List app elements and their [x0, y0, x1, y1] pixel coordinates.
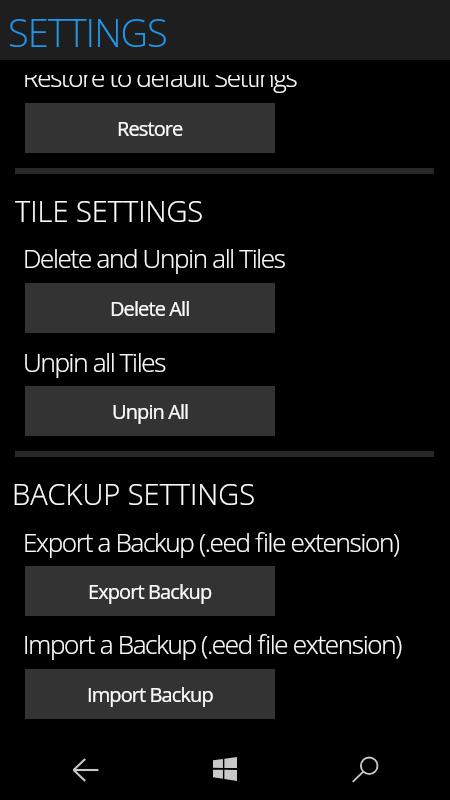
button[interactable]: Restore: [25, 103, 275, 153]
staticText: Delete and Unpin all Tiles: [23, 240, 285, 275]
staticText: Export Backup: [88, 578, 212, 605]
staticText: Delete All: [110, 295, 190, 322]
staticText: TILE SETTINGS: [15, 191, 204, 230]
button[interactable]: Export Backup: [25, 566, 275, 616]
button[interactable]: Back: [46, 738, 126, 800]
staticText: Restore: [117, 115, 183, 142]
staticText: Export a Backup (.eed file extension): [23, 524, 399, 559]
staticText: Import Backup: [87, 681, 213, 708]
button[interactable]: Search: [325, 738, 405, 800]
button[interactable]: Unpin All: [25, 386, 275, 436]
staticText: BACKUP SETTINGS: [12, 474, 256, 513]
staticText: Import a Backup (.eed file extension): [23, 626, 401, 661]
button[interactable]: Start: [185, 737, 265, 800]
button[interactable]: Import Backup: [25, 669, 275, 719]
staticText: Restore to default Settings: [23, 75, 297, 94]
staticText: SETTINGS: [8, 6, 167, 58]
staticText: Unpin all Tiles: [23, 344, 166, 379]
button[interactable]: Delete All: [25, 283, 275, 333]
staticText: Unpin All: [112, 398, 189, 425]
